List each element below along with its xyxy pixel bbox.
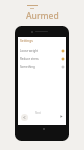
staticText: Something — [20, 65, 61, 69]
staticText: Aurmed — [26, 10, 59, 22]
button[interactable]: Next — [59, 114, 64, 119]
button[interactable]: Next — [35, 111, 41, 115]
staticText: Loose weight — [20, 49, 61, 53]
staticText: Settings — [20, 38, 33, 42]
staticText: Reduce stress — [20, 57, 61, 61]
button[interactable]: Previous — [21, 114, 28, 121]
button[interactable]: Reduce stress — [18, 55, 66, 63]
button[interactable]: Loose weight — [18, 47, 66, 55]
button[interactable]: Something — [18, 63, 66, 71]
staticText: Next — [35, 111, 41, 115]
